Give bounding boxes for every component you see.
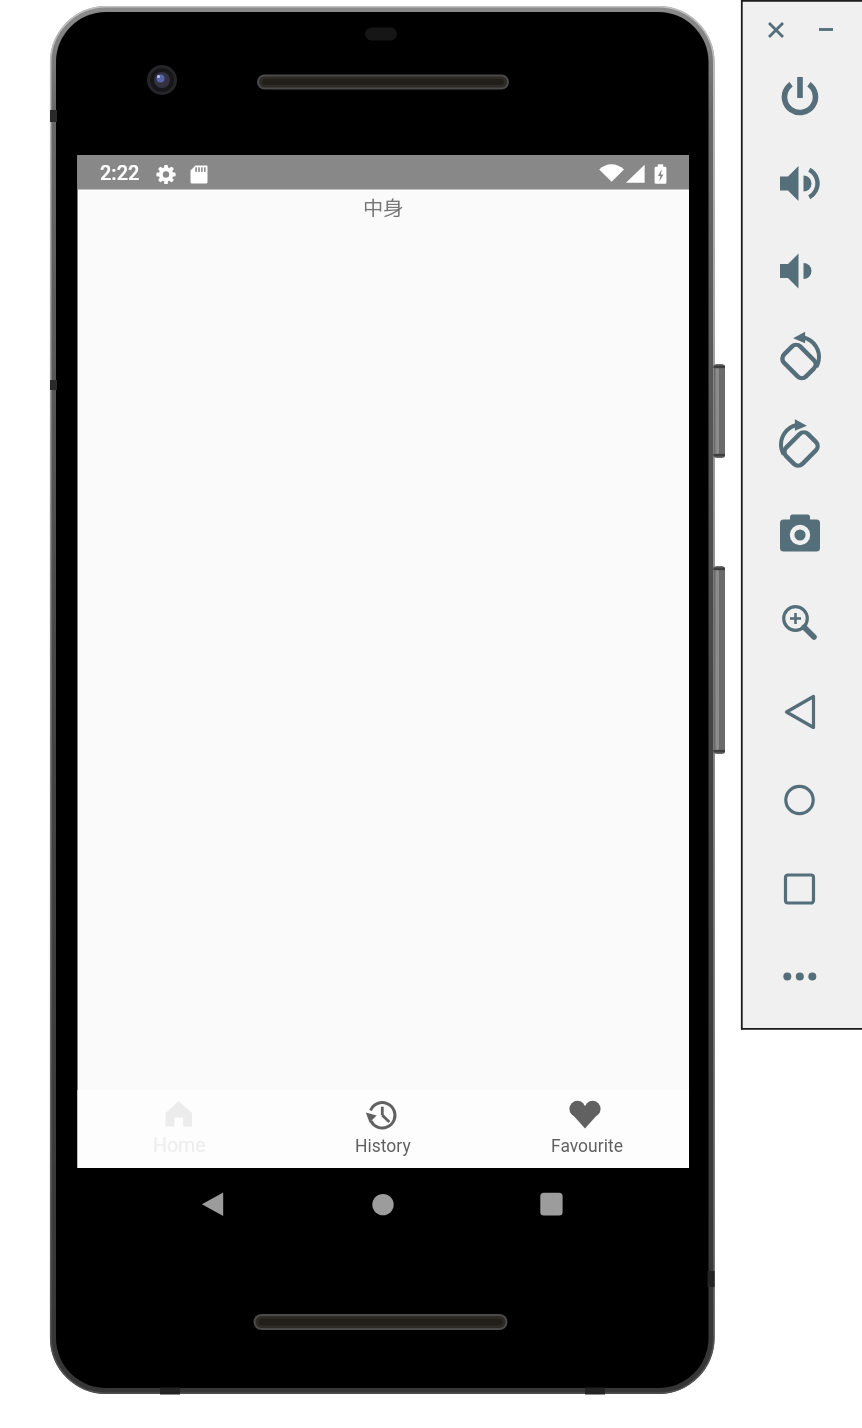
staticText: Home xyxy=(153,1134,206,1157)
button[interactable]: History xyxy=(281,1090,485,1168)
button[interactable] xyxy=(508,1178,608,1232)
button[interactable] xyxy=(758,12,794,48)
button[interactable] xyxy=(777,689,823,735)
staticText: 2:22 xyxy=(100,161,140,184)
button[interactable] xyxy=(777,596,823,642)
button[interactable] xyxy=(777,777,823,823)
button[interactable] xyxy=(777,866,823,912)
button[interactable] xyxy=(777,248,823,294)
button[interactable] xyxy=(777,73,823,119)
button[interactable] xyxy=(777,954,823,1000)
button[interactable] xyxy=(777,511,823,557)
button[interactable] xyxy=(777,423,823,469)
button[interactable] xyxy=(160,1178,260,1232)
button[interactable] xyxy=(777,336,823,382)
button[interactable] xyxy=(777,161,823,207)
button[interactable]: Favourite xyxy=(485,1090,689,1168)
button[interactable] xyxy=(333,1178,433,1232)
button[interactable] xyxy=(808,12,844,48)
staticText: History xyxy=(355,1136,411,1157)
button[interactable]: Home xyxy=(77,1090,281,1168)
staticText: 中身 xyxy=(363,193,403,221)
staticText: Favourite xyxy=(551,1136,623,1157)
